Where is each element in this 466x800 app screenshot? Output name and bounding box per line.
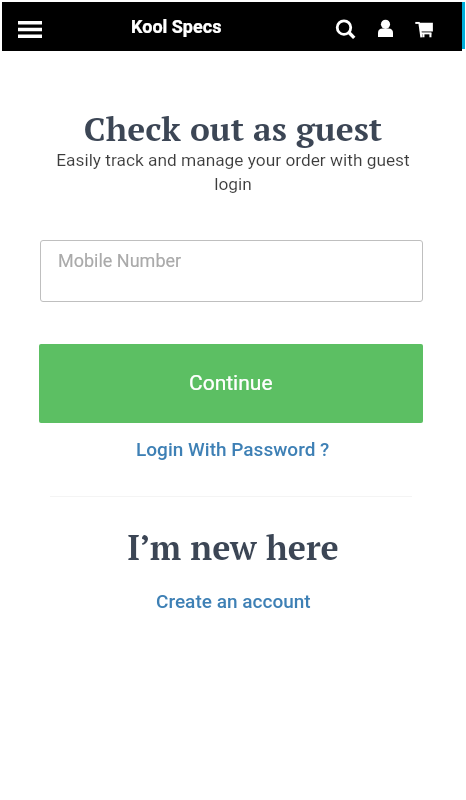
staticText: Kool Specs: [131, 16, 222, 37]
button[interactable]: Cart: [404, 7, 444, 52]
staticText: Continue: [189, 371, 273, 396]
staticText: Check out as guest: [0, 106, 466, 150]
staticText: Create an account: [156, 590, 311, 612]
button[interactable]: Create an account: [0, 587, 466, 615]
button[interactable]: Account: [365, 4, 406, 52]
staticText: Easily track and manage your order with …: [42, 150, 424, 194]
button[interactable]: Mobile Number: [40, 240, 423, 302]
button[interactable]: Continue: [39, 344, 423, 423]
staticText: I’m new here: [0, 525, 466, 570]
button[interactable]: Login With Password ?: [0, 435, 466, 463]
button[interactable]: Menu: [6, 6, 54, 51]
staticText: Login With Password ?: [136, 438, 330, 460]
staticText: Mobile Number: [58, 250, 182, 271]
button[interactable]: Search: [325, 6, 365, 53]
